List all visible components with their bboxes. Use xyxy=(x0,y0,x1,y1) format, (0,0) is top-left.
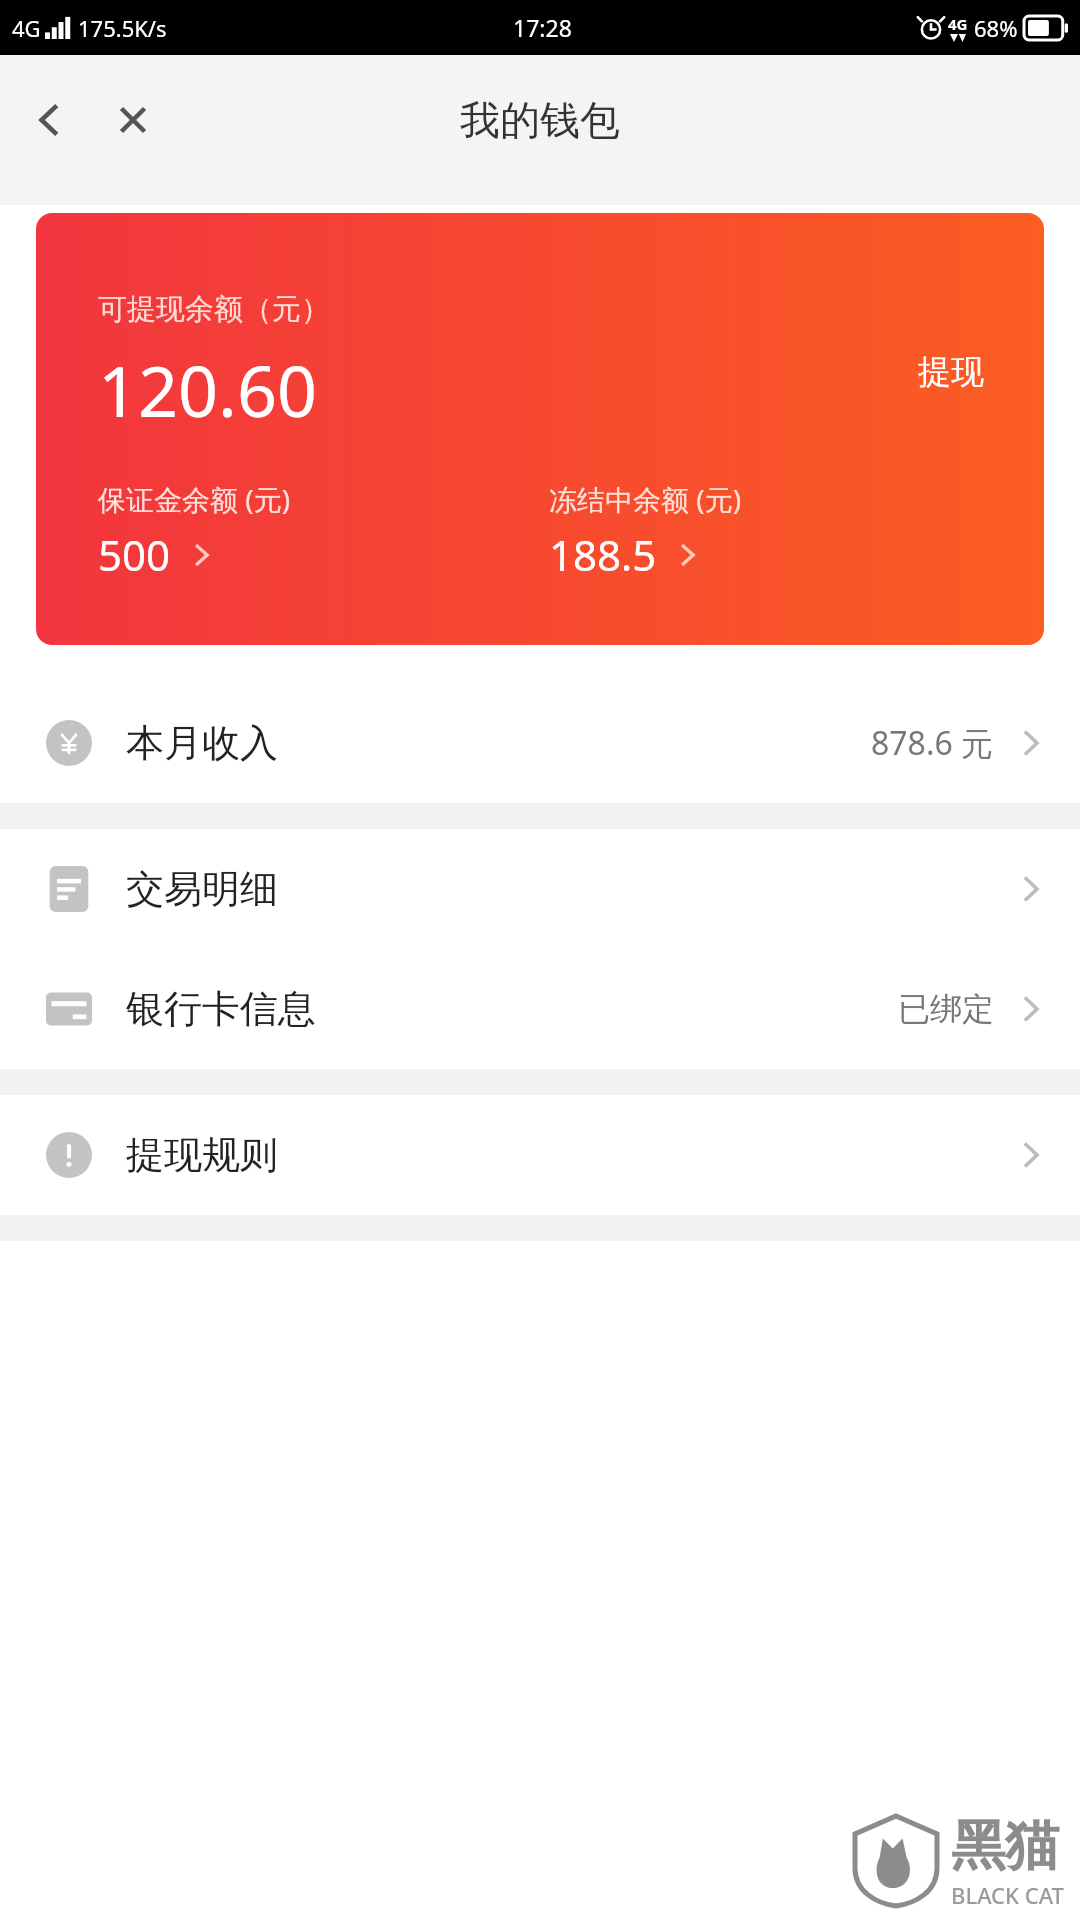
staticText: 可提现余额（元） xyxy=(98,291,330,328)
button[interactable]: 提现规则 xyxy=(0,1095,1080,1215)
button[interactable]: 银行卡信息 xyxy=(0,949,1080,1069)
staticText: 188.5 xyxy=(549,526,657,583)
staticText: 120.60 xyxy=(98,342,317,437)
staticText: 68% xyxy=(974,13,1018,43)
button[interactable]: 可提现余额（元） xyxy=(36,213,1044,645)
staticText: 提现 xyxy=(918,351,984,393)
button[interactable]: 冻结中余额 (元) xyxy=(549,480,1000,583)
staticText: 878.6 元 xyxy=(871,721,994,765)
button[interactable]: 本月收入 xyxy=(0,683,1080,803)
staticText: 本月收入 xyxy=(126,719,278,767)
staticText: 提现规则 xyxy=(126,1131,278,1179)
staticText: 保证金余额 (元) xyxy=(98,480,291,518)
button[interactable]: 保证金余额 (元) xyxy=(98,480,549,583)
staticText: 17:28 xyxy=(513,12,572,43)
staticText: 黑猫 xyxy=(951,1812,1059,1880)
staticText: 已绑定 xyxy=(898,989,994,1029)
staticText: 我的钱包 xyxy=(460,95,620,145)
button[interactable]: 提现 xyxy=(906,343,996,401)
staticText: 冻结中余额 (元) xyxy=(549,480,742,518)
button[interactable]: 交易明细 xyxy=(0,829,1080,949)
button[interactable]: Back xyxy=(18,89,80,151)
staticText: 交易明细 xyxy=(126,865,278,913)
staticText: 4G xyxy=(948,14,968,34)
staticText: 银行卡信息 xyxy=(126,985,316,1033)
staticText: 500 xyxy=(98,526,171,583)
staticText: 175.5K/s xyxy=(78,13,167,43)
button[interactable]: Close xyxy=(102,89,164,151)
staticText: 4G xyxy=(12,13,41,43)
staticText: BLACK CAT xyxy=(951,1880,1064,1910)
